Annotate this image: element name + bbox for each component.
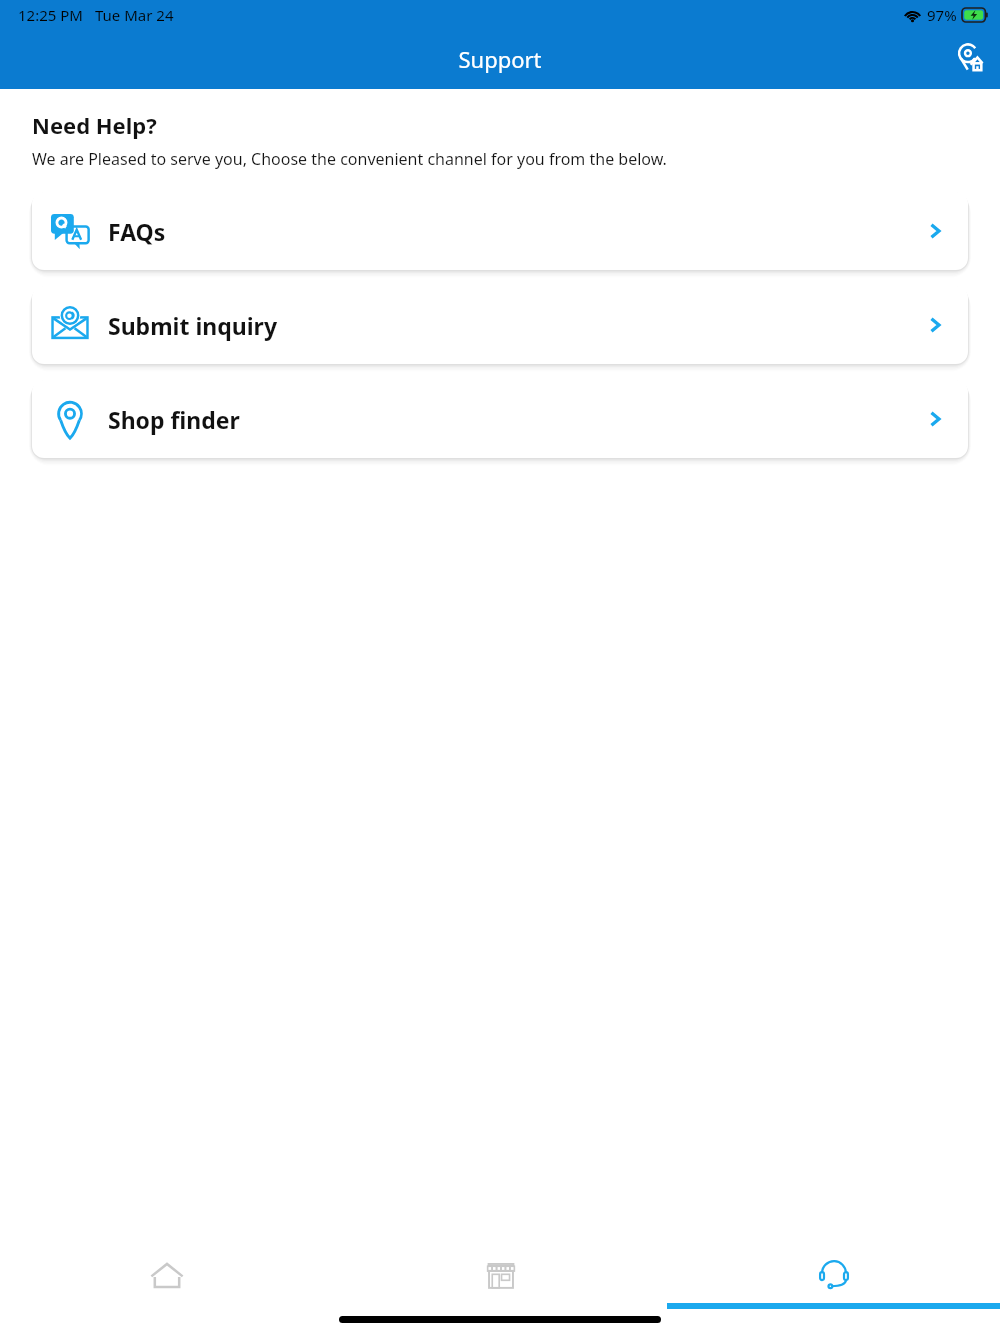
staticText: Support xyxy=(458,44,542,74)
staticText: Need Help? xyxy=(32,110,157,140)
staticText: We are Pleased to serve you, Choose the … xyxy=(32,148,667,170)
staticText: Submit inquiry xyxy=(108,310,278,341)
staticText: 97% xyxy=(927,5,957,25)
staticText: 12:25 PM xyxy=(18,5,83,25)
staticText: Tue Mar 24 xyxy=(95,5,174,25)
button[interactable]: Shop finder xyxy=(32,380,968,458)
button[interactable]: Shops xyxy=(334,1235,667,1334)
button[interactable]: Store locator xyxy=(944,31,1000,87)
button[interactable]: FAQs xyxy=(32,192,968,270)
staticText: FAQs xyxy=(108,216,166,247)
button[interactable]: Submit inquiry xyxy=(32,286,968,364)
button[interactable]: Support xyxy=(667,1235,1000,1334)
button[interactable]: Home xyxy=(0,1235,334,1334)
staticText: Shop finder xyxy=(108,404,240,435)
